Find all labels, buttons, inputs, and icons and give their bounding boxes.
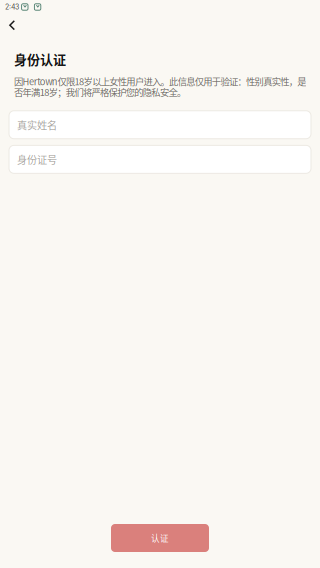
staticText: 真实姓名 xyxy=(17,117,57,132)
button[interactable]: 身份证号 xyxy=(9,145,311,173)
staticText: 身份证号 xyxy=(17,152,57,167)
button[interactable]: Back xyxy=(0,14,29,36)
staticText: 因Hertown仅限18岁以上女性用户进入。此信息仅用于验证：性别真实性，是否年… xyxy=(14,74,306,99)
button[interactable]: 真实姓名 xyxy=(9,111,311,139)
staticText: 2:43 xyxy=(5,3,19,11)
button[interactable]: 认证 xyxy=(111,524,209,552)
staticText: 认证 xyxy=(151,532,169,544)
staticText: 身份认证 xyxy=(14,49,66,68)
